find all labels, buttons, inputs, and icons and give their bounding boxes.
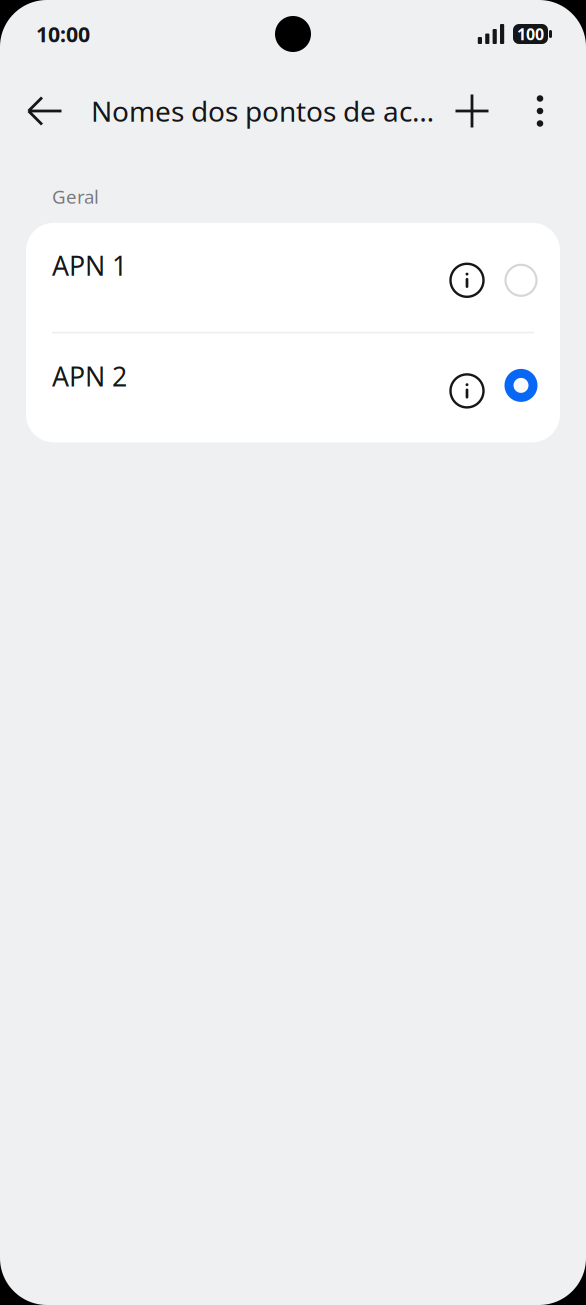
button[interactable]: Select APN 1	[496, 223, 546, 332]
button[interactable]: Add APN	[441, 68, 503, 154]
staticText: Geral	[52, 184, 99, 209]
button[interactable]: More options	[513, 68, 567, 154]
staticText: APN 2	[52, 358, 127, 394]
staticText: 100	[517, 23, 544, 45]
staticText: APN 1	[52, 248, 127, 283]
button[interactable]: Back	[14, 68, 76, 154]
staticText: Nomes dos pontos de ac…	[91, 92, 434, 130]
button[interactable]: APN 1	[26, 223, 560, 332]
button[interactable]: Details for APN 1	[438, 223, 496, 332]
button[interactable]: Details for APN 2	[438, 333, 496, 442]
button[interactable]: APN 2	[26, 333, 560, 442]
button[interactable]: Select APN 2	[496, 333, 546, 442]
staticText: 10:00	[36, 20, 90, 48]
